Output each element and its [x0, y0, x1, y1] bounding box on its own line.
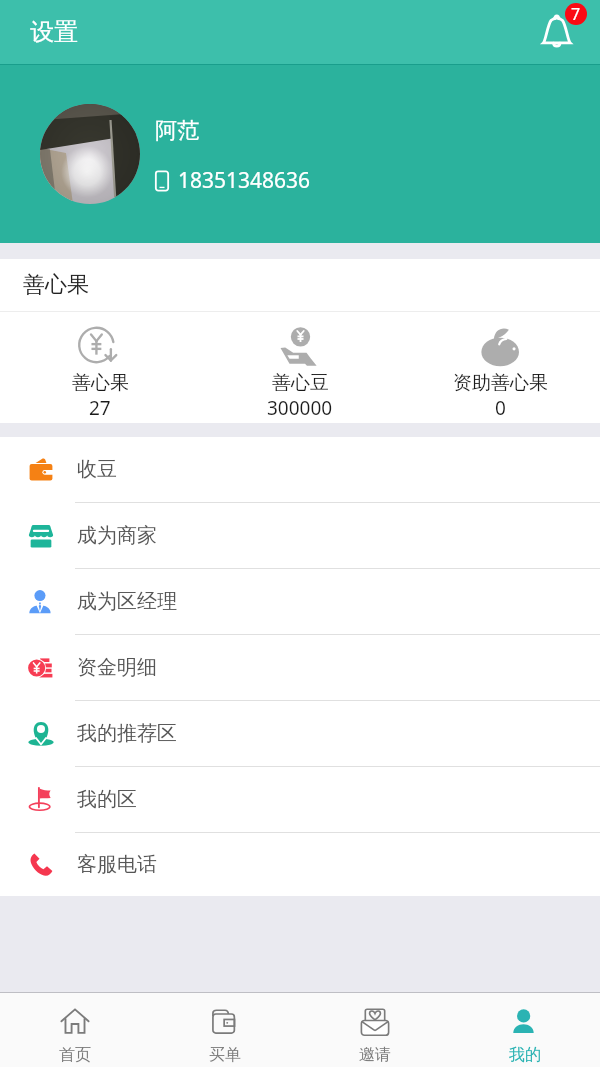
staticText: 7 — [571, 3, 581, 25]
button[interactable]: 我的推荐区 — [0, 701, 600, 767]
button[interactable]: 首页 — [0, 993, 150, 1067]
staticText: 我的推荐区 — [77, 721, 177, 746]
button[interactable]: 我的区 — [0, 767, 600, 833]
button[interactable]: 资金明细 — [0, 635, 600, 701]
staticText: 18351348636 — [178, 166, 311, 195]
staticText: 收豆 — [77, 457, 117, 482]
staticText: 资金明细 — [77, 655, 157, 680]
staticText: 设置 — [30, 17, 78, 47]
staticText: 资助善心果 — [453, 371, 548, 395]
button[interactable]: 收豆 — [0, 437, 600, 503]
staticText: 0 — [495, 395, 506, 421]
button[interactable]: 资助善心果 — [400, 312, 600, 423]
button[interactable]: 成为商家 — [0, 503, 600, 569]
staticText: 首页 — [59, 1045, 91, 1065]
button[interactable]: 善心豆 — [200, 312, 400, 423]
button[interactable]: Notifications — [530, 4, 586, 60]
staticText: 阿范 — [155, 117, 199, 145]
staticText: 善心果 — [72, 371, 129, 395]
button[interactable]: 我的 — [450, 993, 600, 1067]
button[interactable]: 善心果 — [0, 312, 200, 423]
staticText: 27 — [89, 395, 111, 421]
button[interactable]: 成为区经理 — [0, 569, 600, 635]
staticText: 300000 — [267, 395, 333, 421]
staticText: 成为区经理 — [77, 589, 177, 614]
staticText: 邀请 — [359, 1045, 391, 1065]
staticText: 我的区 — [77, 787, 137, 812]
button[interactable]: 买单 — [150, 993, 300, 1067]
button[interactable]: 客服电话 — [0, 833, 600, 896]
staticText: 客服电话 — [77, 852, 157, 877]
button[interactable]: 邀请 — [300, 993, 450, 1067]
staticText: 我的 — [509, 1045, 541, 1065]
staticText: 善心果 — [23, 271, 89, 299]
staticText: 成为商家 — [77, 523, 157, 548]
staticText: 善心豆 — [272, 371, 329, 395]
staticText: 买单 — [209, 1045, 241, 1065]
